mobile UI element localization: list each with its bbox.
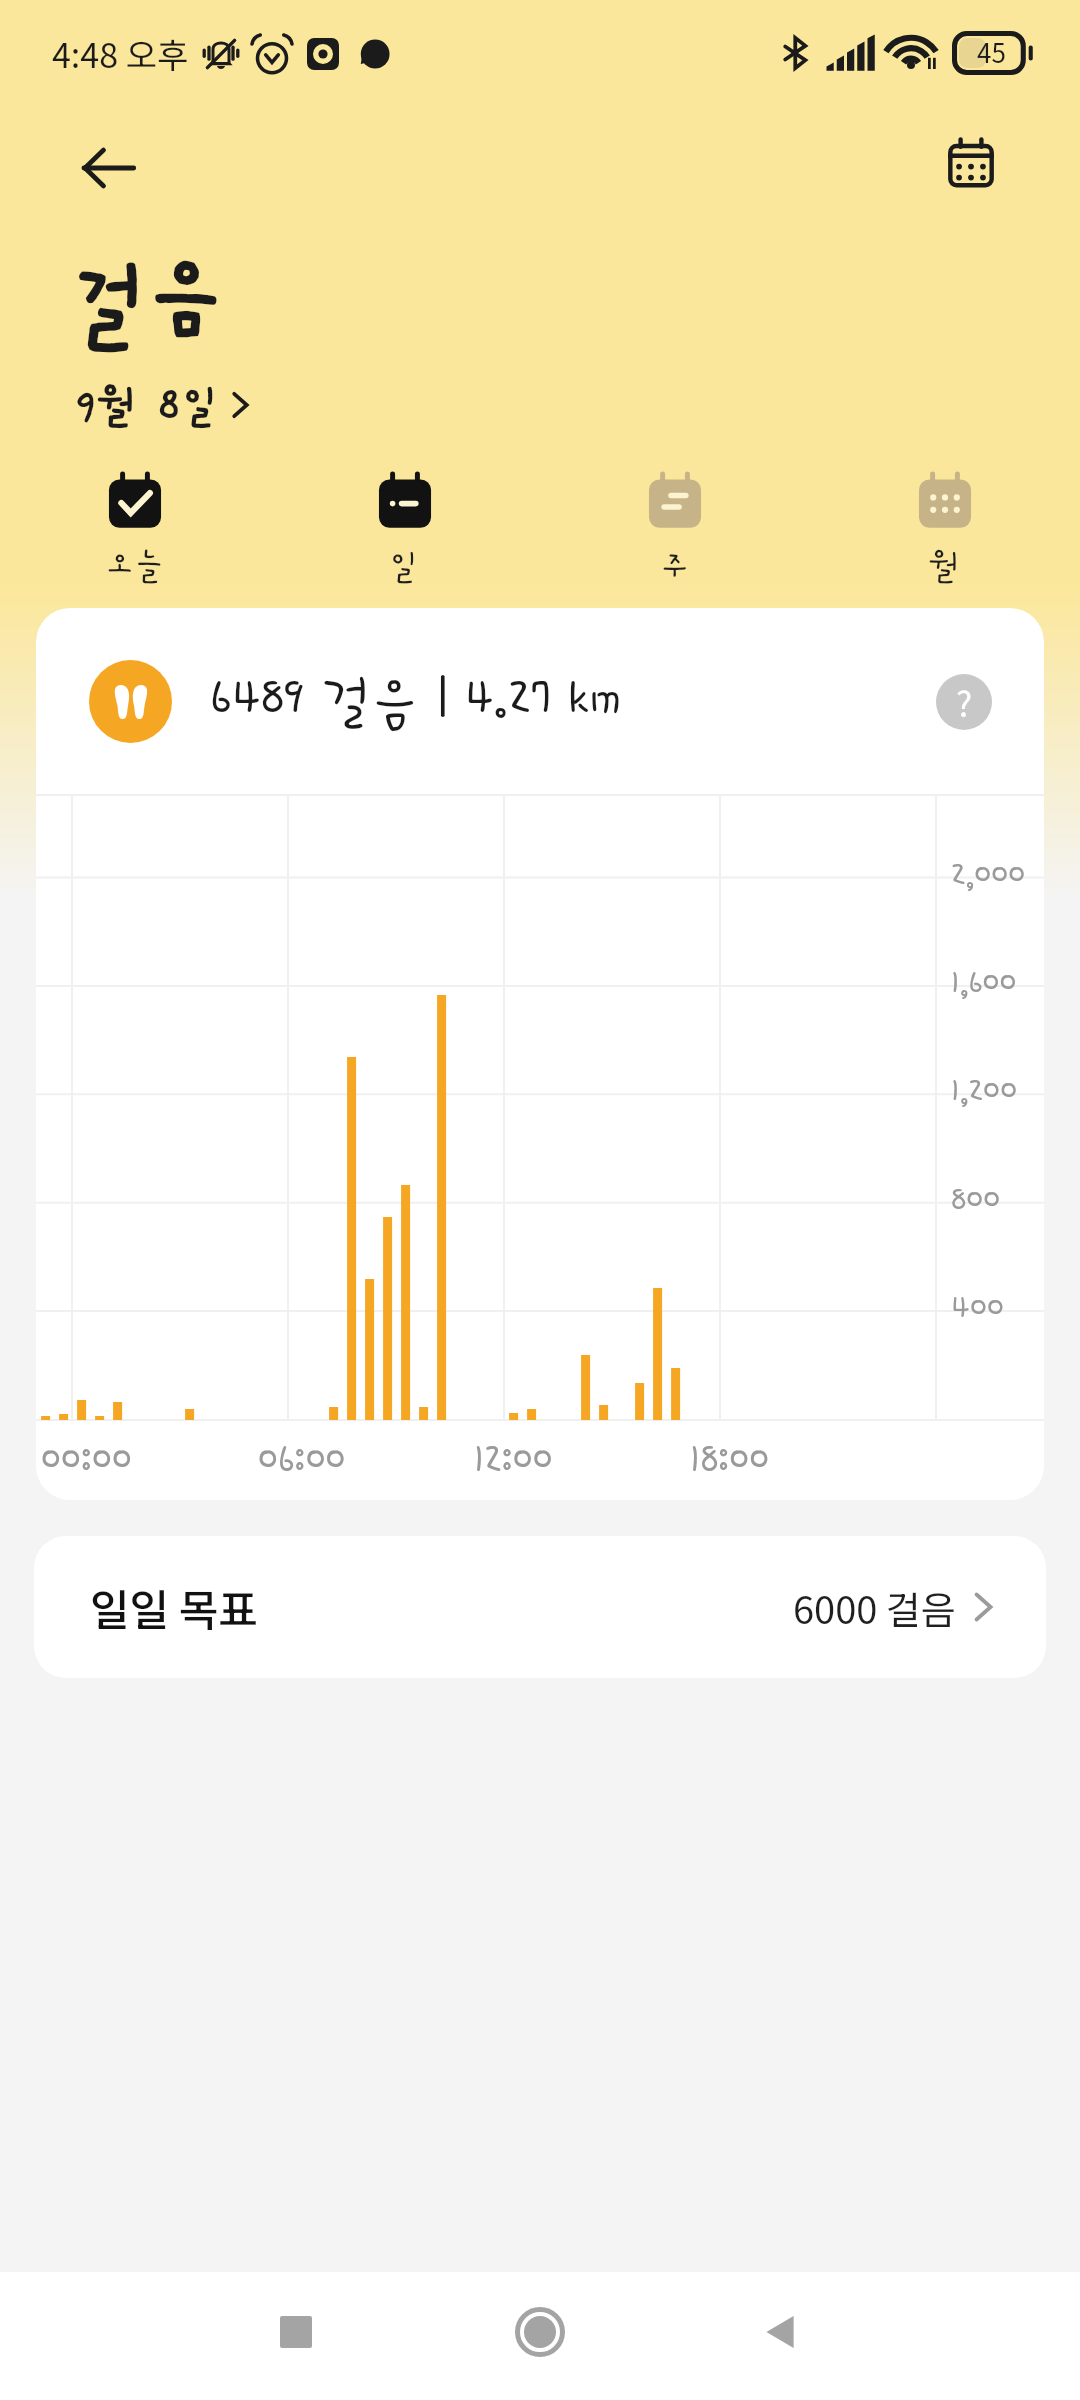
staticText: 일 xyxy=(390,548,420,584)
button[interactable]: 일 xyxy=(270,468,540,588)
button[interactable]: Home xyxy=(495,2287,585,2377)
button[interactable]: Back xyxy=(735,2287,825,2377)
staticText: 45 xyxy=(977,33,1006,71)
staticText: 오늘 xyxy=(105,548,165,584)
staticText: 월 xyxy=(930,548,960,584)
staticText: 18:00 xyxy=(690,1439,770,1487)
button[interactable]: Back xyxy=(80,140,136,196)
button[interactable]: 일일 목표 xyxy=(34,1536,1046,1678)
staticText: ? xyxy=(956,678,973,727)
button[interactable]: 오늘 xyxy=(0,468,270,588)
staticText: 일일 목표 xyxy=(90,1576,258,1638)
button[interactable]: Help xyxy=(936,674,992,730)
staticText: 6000 걸음 xyxy=(793,1580,956,1635)
button[interactable]: 주 xyxy=(540,468,810,588)
staticText: 400 xyxy=(951,1290,1005,1331)
staticText: 걸음 xyxy=(70,254,221,353)
staticText: 12:00 xyxy=(474,1439,553,1487)
staticText: 6489 걸음 | 4.27 km xyxy=(210,670,621,733)
button[interactable]: Recents xyxy=(251,2287,341,2377)
staticText: 800 xyxy=(951,1182,1001,1223)
staticText: 9월 8일 xyxy=(74,381,221,428)
staticText: 2,000 xyxy=(951,857,1026,898)
button[interactable]: 월 xyxy=(810,468,1080,588)
staticText: 00:00 xyxy=(41,1439,133,1487)
staticText: 1,600 xyxy=(951,965,1017,1006)
staticText: 주 xyxy=(660,548,690,584)
staticText: 06:00 xyxy=(258,1439,346,1487)
button[interactable]: Calendar xyxy=(945,138,997,190)
button[interactable]: 9월 8일 xyxy=(74,381,257,428)
staticText: 4:48 오후 xyxy=(52,29,189,78)
staticText: 1,200 xyxy=(951,1073,1018,1114)
